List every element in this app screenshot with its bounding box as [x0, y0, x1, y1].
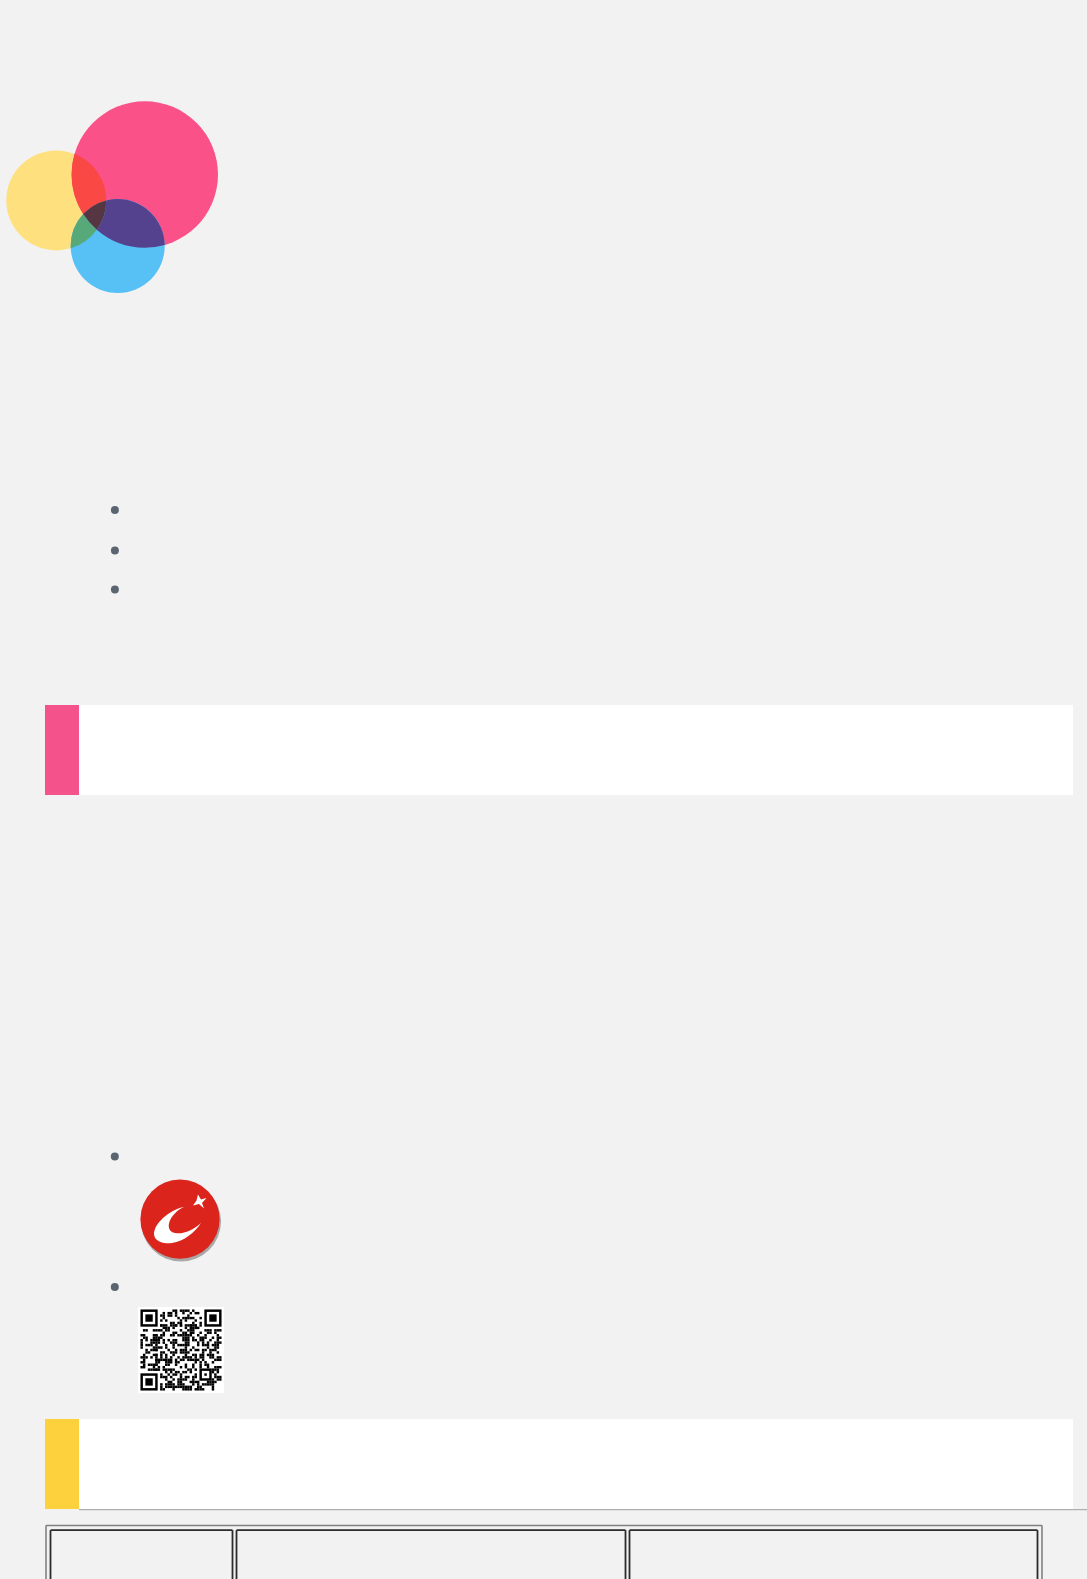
button[interactable]: Brand logo: [0, 0, 260, 320]
button[interactable]: Application icon: [140, 1179, 224, 1263]
button[interactable]: Tip callout: [45, 1419, 1073, 1509]
button[interactable]: Note callout: [45, 705, 1073, 795]
button[interactable]: QR code: [138, 1307, 224, 1393]
